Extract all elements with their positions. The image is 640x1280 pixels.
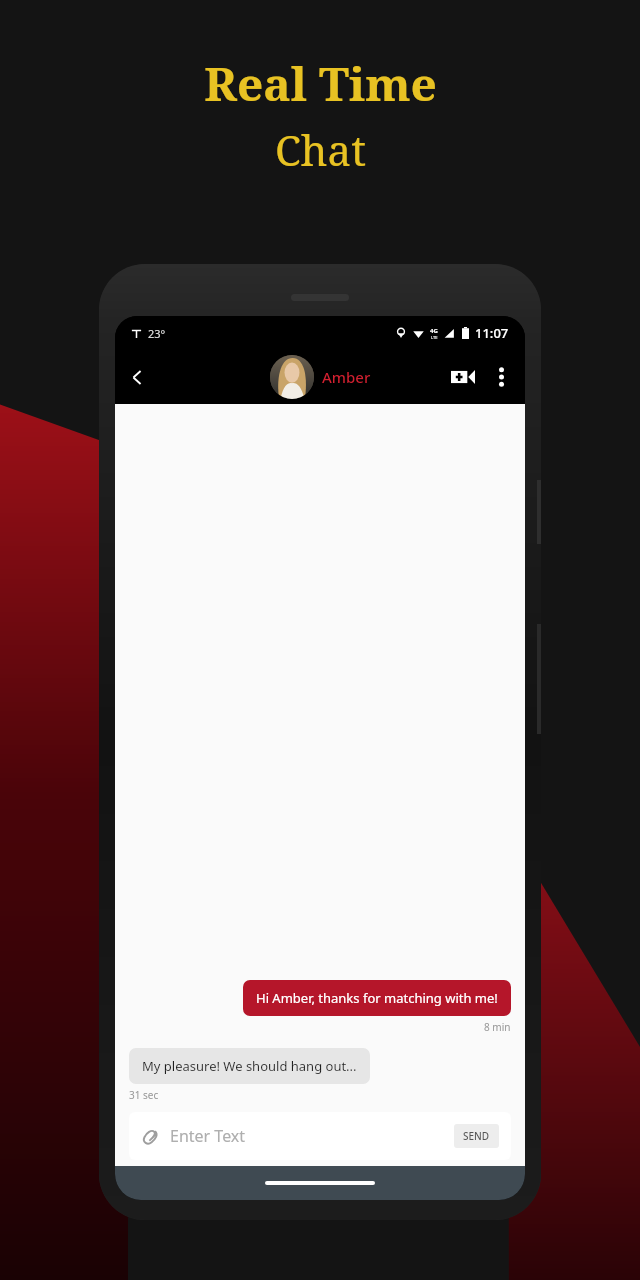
button[interactable]: Start video call <box>443 357 483 397</box>
staticText: 4G <box>430 327 438 335</box>
staticText: Real Time <box>204 52 437 115</box>
button[interactable]: SEND <box>454 1124 499 1148</box>
button[interactable]: Amber <box>270 355 371 399</box>
staticText: 31 sec <box>129 1088 159 1102</box>
button[interactable]: More options <box>483 359 519 395</box>
button[interactable]: My pleasure! We should hang out... <box>129 1048 370 1084</box>
staticText: My pleasure! We should hang out... <box>142 1057 357 1075</box>
button[interactable]: Enter Text <box>129 1112 511 1160</box>
staticText: Hi Amber, thanks for matching with me! <box>256 989 498 1007</box>
staticText: 11:07 <box>475 324 509 342</box>
staticText: Chat <box>275 121 366 178</box>
staticText: 23° <box>148 326 166 341</box>
staticText: 8 min <box>484 1020 511 1034</box>
staticText: SEND <box>463 1129 490 1143</box>
button[interactable]: Hi Amber, thanks for matching with me! <box>243 980 511 1016</box>
staticText: Enter Text <box>170 1125 246 1147</box>
button[interactable]: Back <box>115 355 159 399</box>
staticText: Amber <box>322 367 371 387</box>
staticText: LTE <box>431 335 438 340</box>
